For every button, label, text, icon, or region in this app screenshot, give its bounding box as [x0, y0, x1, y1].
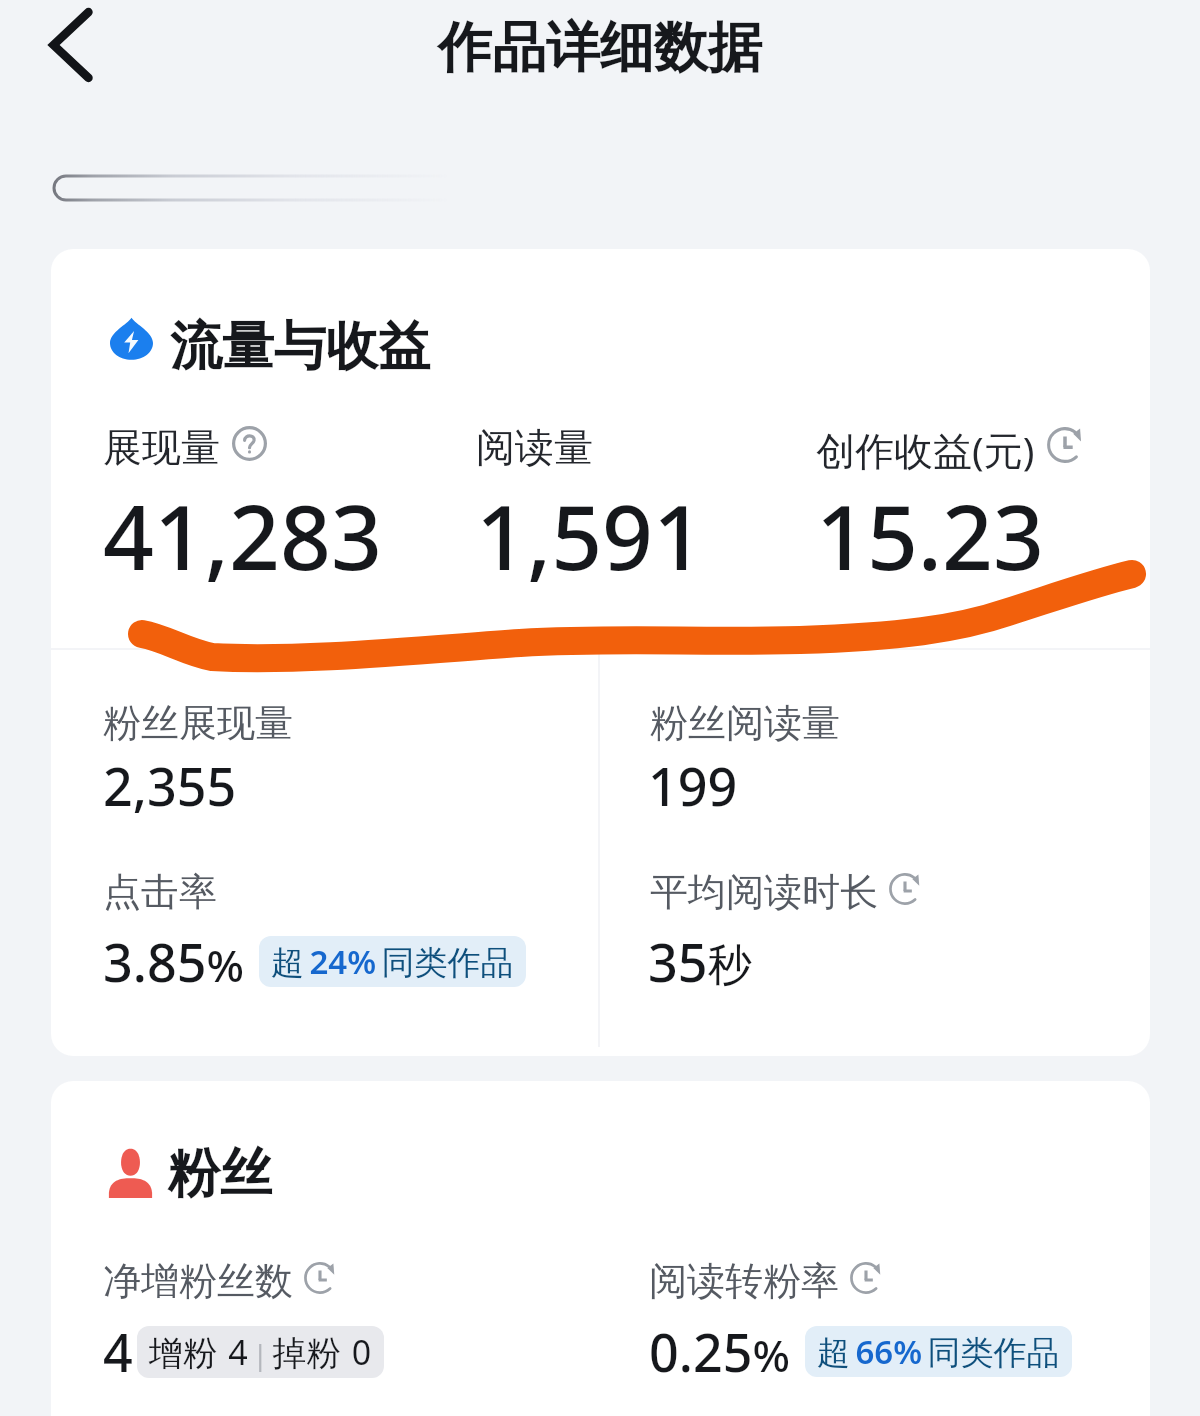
- staticText: 粉丝展现量: [103, 699, 293, 747]
- button[interactable]: What is this metric?: [232, 426, 267, 461]
- button[interactable]: Data is delayed: [304, 1262, 336, 1294]
- staticText: 15.23: [816, 475, 1044, 596]
- button[interactable]: Data is delayed: [889, 873, 921, 905]
- staticText: 粉丝: [168, 1141, 272, 1207]
- staticText: 阅读量: [476, 423, 593, 472]
- staticText: 41,283: [103, 475, 382, 596]
- staticText: 1,591: [476, 475, 704, 596]
- staticText: 流量与收益: [170, 314, 430, 380]
- staticText: 2,355: [103, 750, 237, 821]
- staticText: 作品详细数据: [438, 14, 762, 82]
- button[interactable]: Back: [31, 5, 111, 85]
- button[interactable]: Data is delayed: [850, 1262, 882, 1294]
- staticText: 平均阅读时长: [650, 868, 878, 916]
- staticText: 超 24% 同类作品: [271, 939, 514, 984]
- button[interactable]: 超 66% 同类作品: [805, 1326, 1072, 1377]
- button[interactable]: Data is delayed: [1047, 427, 1083, 463]
- staticText: 超 66% 同类作品: [817, 1329, 1060, 1374]
- staticText: 增粉 4 | 掉粉 0: [149, 1329, 372, 1375]
- staticText: 净增粉丝数: [103, 1257, 293, 1305]
- staticText: 秒: [708, 938, 752, 993]
- staticText: 4: [103, 1316, 133, 1387]
- button[interactable]: 增粉 4 | 掉粉 0: [137, 1326, 384, 1378]
- staticText: 35: [648, 926, 708, 997]
- staticText: 创作收益(元): [816, 423, 1035, 476]
- button[interactable]: 超 24% 同类作品: [259, 936, 526, 987]
- staticText: 粉丝阅读量: [650, 699, 840, 747]
- staticText: 点击率: [103, 868, 217, 916]
- staticText: 199: [648, 750, 738, 821]
- staticText: 3.85%: [103, 926, 244, 997]
- staticText: 阅读转粉率: [649, 1257, 839, 1305]
- staticText: 展现量: [103, 423, 220, 472]
- staticText: 0.25%: [649, 1316, 790, 1387]
